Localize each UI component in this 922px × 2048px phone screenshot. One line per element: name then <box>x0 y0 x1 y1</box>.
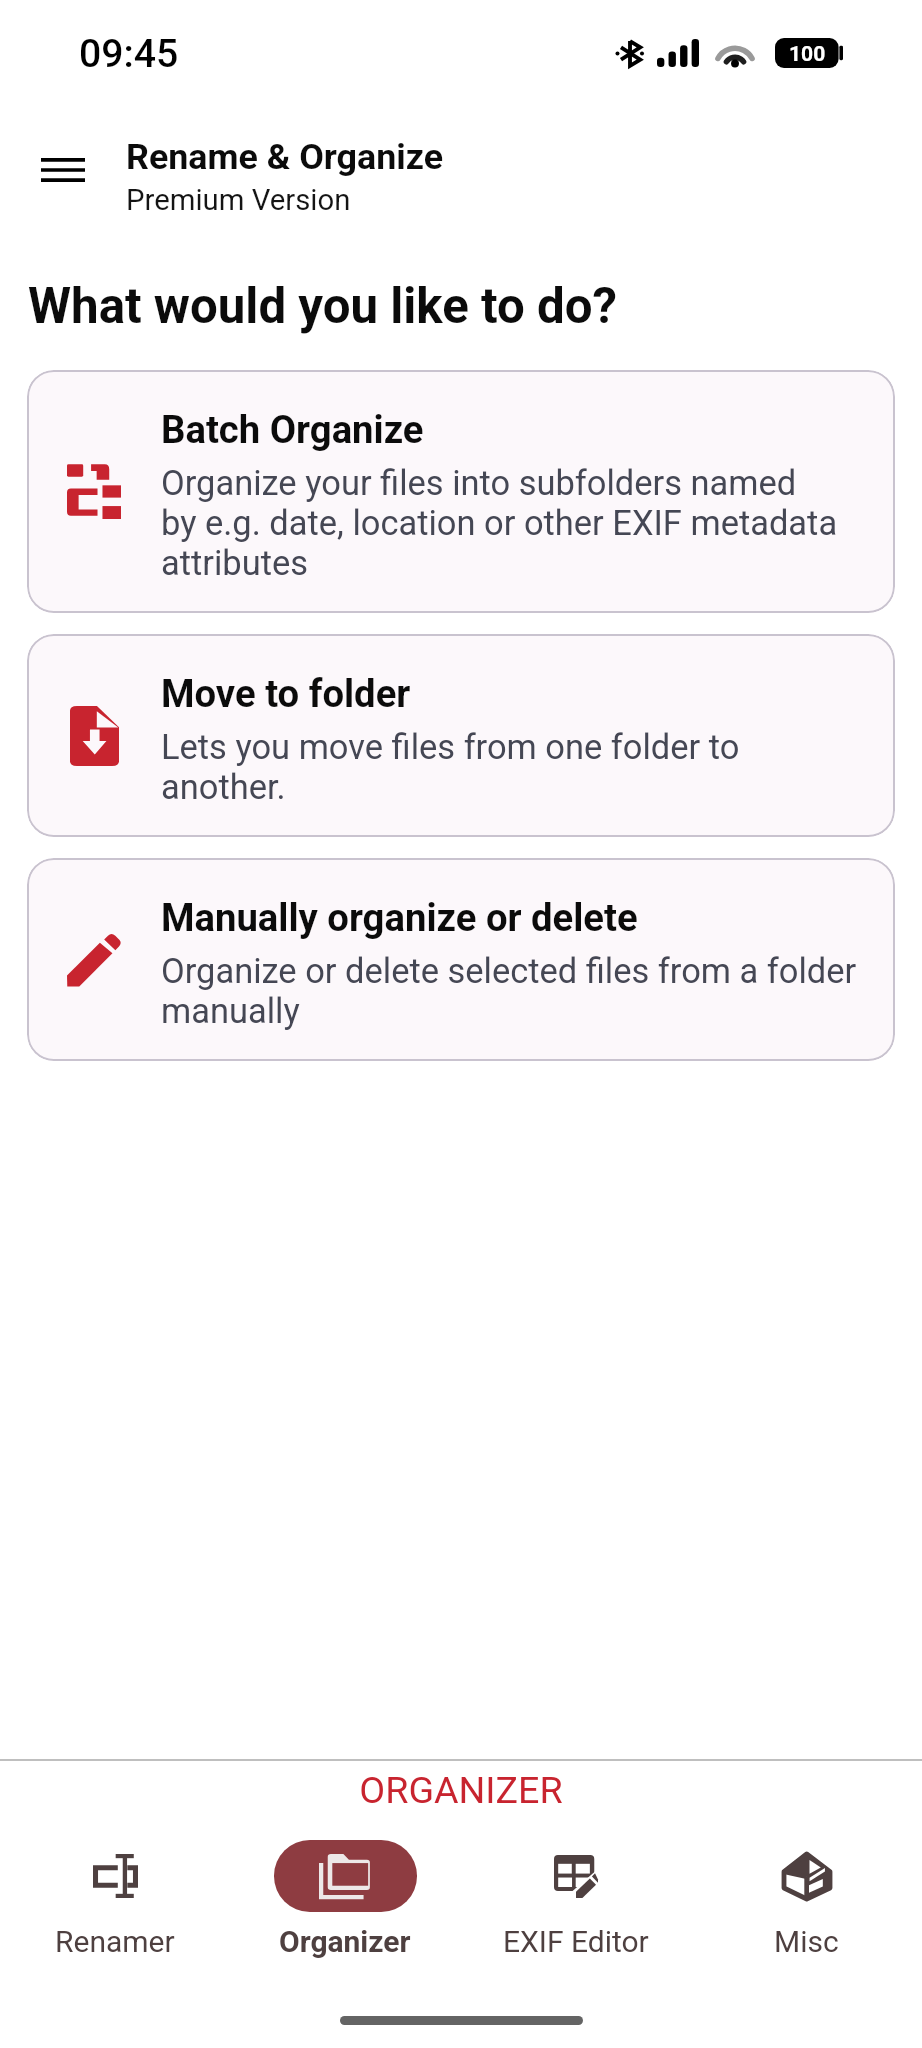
staticText: Misc <box>774 1924 839 1959</box>
staticText: Move to folder <box>161 671 411 716</box>
staticText: Renamer <box>55 1924 175 1959</box>
staticText: What would you like to do? <box>28 277 617 335</box>
staticText: EXIF Editor <box>503 1924 649 1959</box>
button[interactable]: Move to folder <box>27 634 895 837</box>
staticText: Organize or delete selected files from a… <box>161 951 857 1031</box>
staticText: Lets you move files from one folder to a… <box>161 727 740 807</box>
button[interactable]: Misc <box>691 1840 922 1959</box>
staticText: Rename & Organize <box>126 136 444 178</box>
button[interactable]: Organizer <box>230 1840 460 1959</box>
staticText: Manually organize or delete <box>161 895 638 940</box>
button[interactable]: Manually organize or delete <box>27 858 895 1061</box>
staticText: Organizer <box>279 1924 411 1959</box>
staticText: ORGANIZER <box>0 1768 922 1812</box>
button[interactable]: Open navigation menu <box>16 123 110 217</box>
button[interactable]: Batch Organize <box>27 370 895 613</box>
staticText: 100 <box>789 41 826 66</box>
button[interactable]: Renamer <box>0 1840 230 1959</box>
staticText: Organize your files into subfolders name… <box>161 463 838 583</box>
button[interactable]: EXIF Editor <box>460 1840 691 1959</box>
staticText: Batch Organize <box>161 407 424 452</box>
staticText: Premium Version <box>126 183 351 217</box>
staticText: 09:45 <box>79 31 179 77</box>
